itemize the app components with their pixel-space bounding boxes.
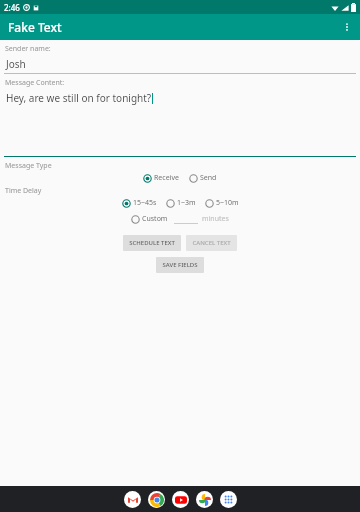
staticText: 15~45s — [133, 198, 157, 208]
button[interactable]: YouTube — [172, 491, 189, 508]
staticText: Time Delay — [5, 186, 42, 196]
staticText: minutes — [202, 214, 229, 224]
button[interactable]: 5~10m — [205, 198, 239, 208]
staticText: SCHEDULE TEXT — [129, 239, 175, 247]
staticText: Send — [200, 173, 217, 183]
button[interactable]: Receive — [143, 173, 179, 183]
staticText: 2:46 — [4, 2, 20, 13]
button[interactable]: All apps — [220, 491, 237, 508]
button[interactable]: Custom — [131, 214, 168, 224]
button[interactable]: 15~45s — [122, 198, 157, 208]
staticText: Message Type — [5, 161, 52, 171]
staticText: CANCEL TEXT — [192, 239, 231, 247]
button[interactable]: SCHEDULE TEXT — [123, 235, 181, 251]
button[interactable]: CANCEL TEXT — [186, 235, 237, 251]
staticText: Custom — [142, 214, 168, 224]
staticText: Message Content: — [5, 78, 65, 88]
staticText: Fake Text — [8, 19, 62, 35]
button[interactable]: 1~3m — [166, 198, 196, 208]
staticText: 1~3m — [177, 198, 196, 208]
button[interactable]: SAVE FIELDS — [156, 257, 204, 273]
staticText: Hey, are we still on for tonight? — [6, 91, 152, 105]
staticText: 5~10m — [216, 198, 239, 208]
button[interactable]: More options — [334, 14, 360, 40]
staticText: SAVE FIELDS — [162, 261, 198, 269]
staticText: Sender name: — [5, 44, 51, 54]
button[interactable]: Gmail — [124, 491, 141, 508]
staticText: Receive — [154, 173, 179, 183]
button[interactable]: Photos — [196, 491, 213, 508]
button[interactable]: Send — [189, 173, 217, 183]
button[interactable]: Chrome — [148, 491, 165, 508]
staticText: Josh — [6, 57, 26, 71]
